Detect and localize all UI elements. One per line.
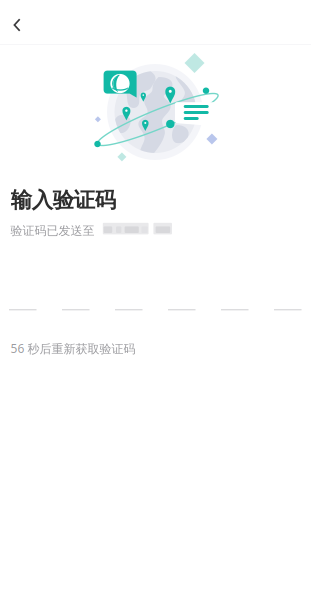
staticText: 输入验证码 [11,187,116,213]
button[interactable]: 56 秒后重新获取验证码 [10,340,135,356]
button[interactable]: Back [0,4,38,46]
staticText: 验证码已发送至 [11,223,95,238]
staticText: 56 秒后重新获取验证码 [10,340,135,356]
